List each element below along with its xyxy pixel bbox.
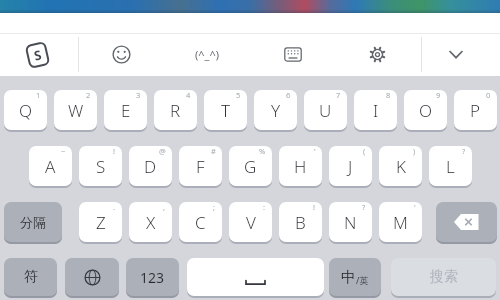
- button[interactable]: 分隔: [4, 202, 62, 242]
- button[interactable]: [65, 258, 119, 296]
- staticText: S: [32, 45, 44, 64]
- staticText: O: [419, 99, 433, 122]
- button[interactable]: X: [129, 202, 172, 242]
- staticText: D: [144, 155, 157, 178]
- staticText: N: [344, 211, 357, 234]
- button[interactable]: O: [404, 90, 447, 130]
- staticText: 分隔: [20, 214, 46, 230]
- button[interactable]: A: [29, 146, 72, 186]
- staticText: U: [319, 99, 332, 122]
- button[interactable]: 123: [126, 258, 179, 296]
- staticText: Q: [19, 99, 33, 122]
- staticText: I: [373, 99, 379, 122]
- button[interactable]: C: [179, 202, 222, 242]
- button[interactable]: Y: [254, 90, 297, 130]
- staticText: ;: [213, 202, 216, 212]
- button[interactable]: 中: [329, 258, 381, 296]
- staticText: F: [196, 155, 205, 178]
- staticText: 6: [286, 90, 291, 100]
- staticText: 9: [436, 90, 441, 100]
- staticText: :: [263, 202, 266, 212]
- button[interactable]: H: [279, 146, 322, 186]
- staticText: K: [396, 155, 406, 178]
- staticText: V: [246, 211, 256, 234]
- button[interactable]: [187, 258, 324, 296]
- button[interactable]: 搜索: [391, 258, 496, 296]
- button[interactable]: U: [304, 90, 347, 130]
- button[interactable]: V: [229, 202, 272, 242]
- button[interactable]: M: [379, 202, 422, 242]
- staticText: 中: [341, 268, 356, 287]
- staticText: ~: [61, 146, 66, 156]
- staticText: Z: [96, 211, 106, 234]
- staticText: ?: [462, 146, 466, 156]
- button[interactable]: D: [129, 146, 172, 186]
- staticText: ,: [163, 202, 166, 212]
- staticText: /英: [356, 274, 369, 286]
- button[interactable]: L: [429, 146, 472, 186]
- staticText: ?: [362, 202, 366, 212]
- staticText: @: [159, 146, 166, 156]
- staticText: G: [244, 155, 257, 178]
- button[interactable]: [436, 202, 497, 242]
- staticText: (: [363, 146, 366, 156]
- staticText: 搜索: [430, 268, 458, 286]
- button[interactable]: Q: [4, 90, 47, 130]
- button[interactable]: T: [204, 90, 247, 130]
- staticText: 2: [86, 90, 91, 100]
- button[interactable]: W: [54, 90, 97, 130]
- staticText: X: [146, 211, 156, 234]
- staticText: C: [195, 211, 206, 234]
- staticText: J: [348, 155, 353, 178]
- staticText: ': [414, 202, 416, 212]
- staticText: T: [221, 99, 231, 122]
- staticText: #: [211, 146, 216, 156]
- staticText: S: [96, 155, 106, 178]
- button[interactable]: R: [154, 90, 197, 130]
- button[interactable]: S: [79, 146, 122, 186]
- staticText: (^_^): [195, 47, 220, 62]
- button[interactable]: [111, 44, 132, 65]
- staticText: .: [113, 202, 116, 212]
- button[interactable]: F: [179, 146, 222, 186]
- button[interactable]: I: [354, 90, 397, 130]
- staticText: 3: [136, 90, 141, 100]
- staticText: E: [121, 99, 131, 122]
- staticText: B: [295, 211, 306, 234]
- staticText: 123: [140, 268, 165, 287]
- staticText: H: [294, 155, 307, 178]
- staticText: 符: [24, 268, 38, 286]
- button[interactable]: G: [229, 146, 272, 186]
- staticText: 1: [36, 90, 41, 100]
- staticText: 4: [186, 90, 191, 100]
- staticText: M: [393, 211, 408, 234]
- staticText: W: [68, 99, 84, 122]
- button[interactable]: S: [25, 41, 50, 69]
- staticText: !: [113, 146, 116, 156]
- staticText: !: [313, 202, 316, 212]
- staticText: L: [446, 155, 455, 178]
- button[interactable]: [368, 45, 387, 64]
- button[interactable]: [284, 47, 302, 62]
- button[interactable]: P: [454, 90, 497, 130]
- button[interactable]: (^_^): [188, 42, 226, 67]
- staticText: P: [470, 99, 481, 122]
- staticText: R: [170, 99, 181, 122]
- staticText: ): [413, 146, 416, 156]
- button[interactable]: K: [379, 146, 422, 186]
- button[interactable]: [444, 46, 468, 63]
- staticText: A: [45, 155, 56, 178]
- button[interactable]: 符: [4, 258, 57, 296]
- button[interactable]: N: [329, 202, 372, 242]
- button[interactable]: Z: [79, 202, 122, 242]
- staticText: ': [314, 146, 316, 156]
- staticText: 5: [236, 90, 241, 100]
- staticText: %: [259, 146, 266, 156]
- staticText: 7: [336, 90, 341, 100]
- button[interactable]: B: [279, 202, 322, 242]
- staticText: 0: [486, 90, 491, 100]
- staticText: Y: [271, 99, 281, 122]
- staticText: 8: [386, 90, 391, 100]
- button[interactable]: E: [104, 90, 147, 130]
- button[interactable]: J: [329, 146, 372, 186]
